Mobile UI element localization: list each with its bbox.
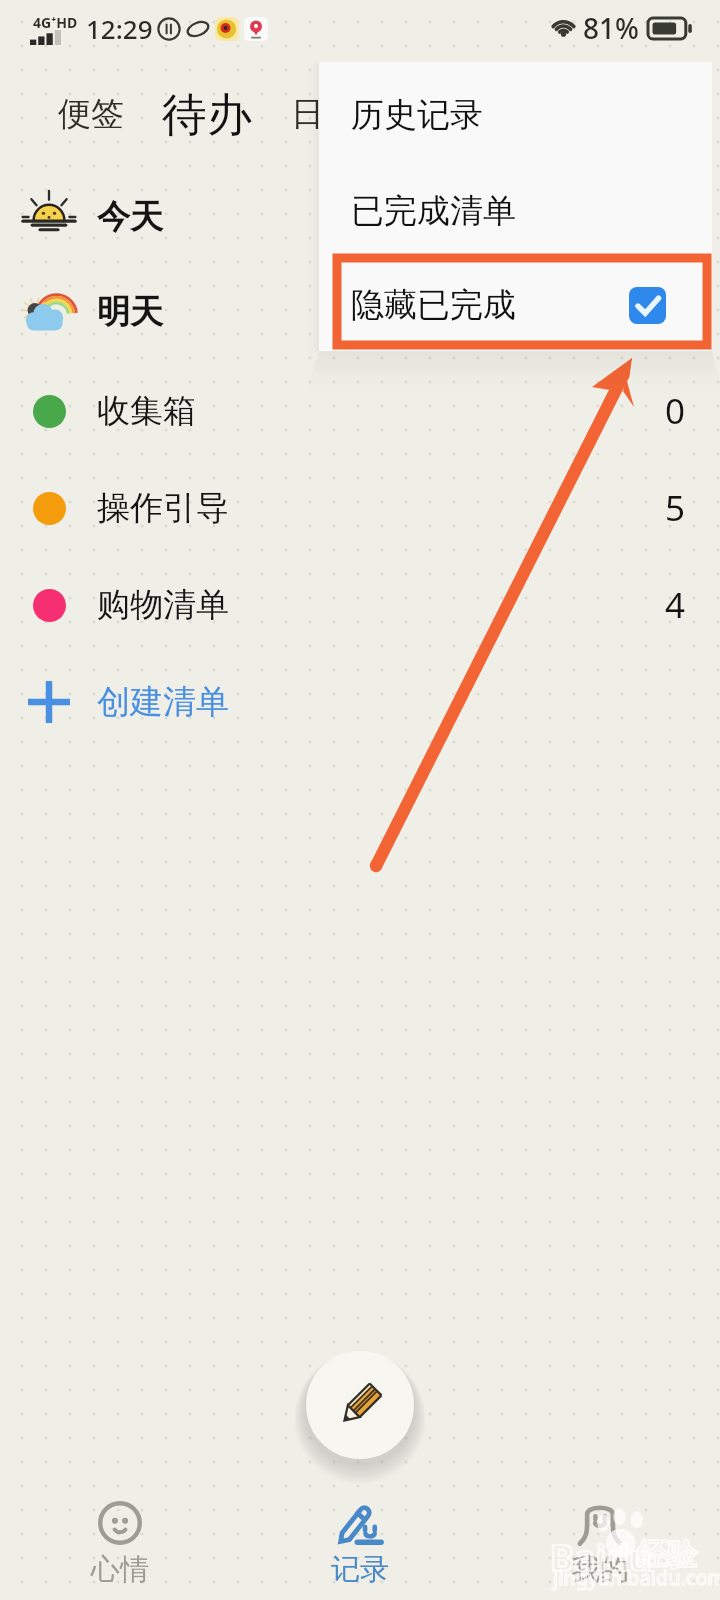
staticText: 日历	[291, 93, 357, 135]
staticText: 已完成清单	[351, 190, 516, 232]
staticText: 购物清单	[97, 584, 229, 626]
staticText: 操作引导	[97, 487, 229, 529]
button[interactable]: 我的	[480, 1496, 720, 1592]
button[interactable]: 历史记录	[319, 67, 712, 163]
button[interactable]: 记录	[240, 1496, 480, 1592]
button[interactable]: 今天	[0, 172, 720, 262]
button[interactable]: 创建清单	[0, 657, 720, 747]
staticText: 创建清单	[97, 681, 229, 723]
button[interactable]: 购物清单	[0, 560, 720, 650]
staticText: 记录	[331, 1551, 389, 1588]
staticText: 今天	[97, 196, 163, 238]
staticText: Baidu	[550, 1533, 653, 1582]
button[interactable]: 隐藏已完成	[319, 259, 712, 351]
staticText: 收集箱	[97, 390, 196, 432]
staticText: 待办	[162, 87, 252, 144]
button[interactable]: 明天	[0, 267, 720, 357]
staticText: 经验	[637, 1536, 697, 1574]
button[interactable]: 已完成清单	[319, 163, 712, 259]
staticText: 明天	[97, 291, 163, 333]
staticText: 隐藏已完成	[351, 284, 516, 326]
button[interactable]: 待办	[156, 82, 258, 149]
staticText: jingyan.baidu.com	[553, 1564, 720, 1591]
staticText: 12:29	[86, 11, 153, 46]
button[interactable]: New note	[306, 1351, 414, 1459]
staticText: 便签	[58, 93, 124, 135]
staticText: 我的	[571, 1551, 629, 1588]
staticText: 历史记录	[351, 94, 483, 136]
staticText: 0	[665, 387, 686, 435]
button[interactable]: 心情	[0, 1496, 240, 1592]
button[interactable]: 收集箱	[0, 366, 720, 456]
staticText: 81%	[583, 9, 639, 47]
staticText: 4	[665, 581, 686, 629]
staticText: 心情	[91, 1551, 149, 1588]
staticText: 5	[665, 484, 686, 532]
button[interactable]: 操作引导	[0, 463, 720, 553]
staticText: 4G⁺HD	[33, 13, 78, 32]
button[interactable]: 日历	[285, 86, 363, 142]
button[interactable]: 便签	[52, 86, 130, 142]
